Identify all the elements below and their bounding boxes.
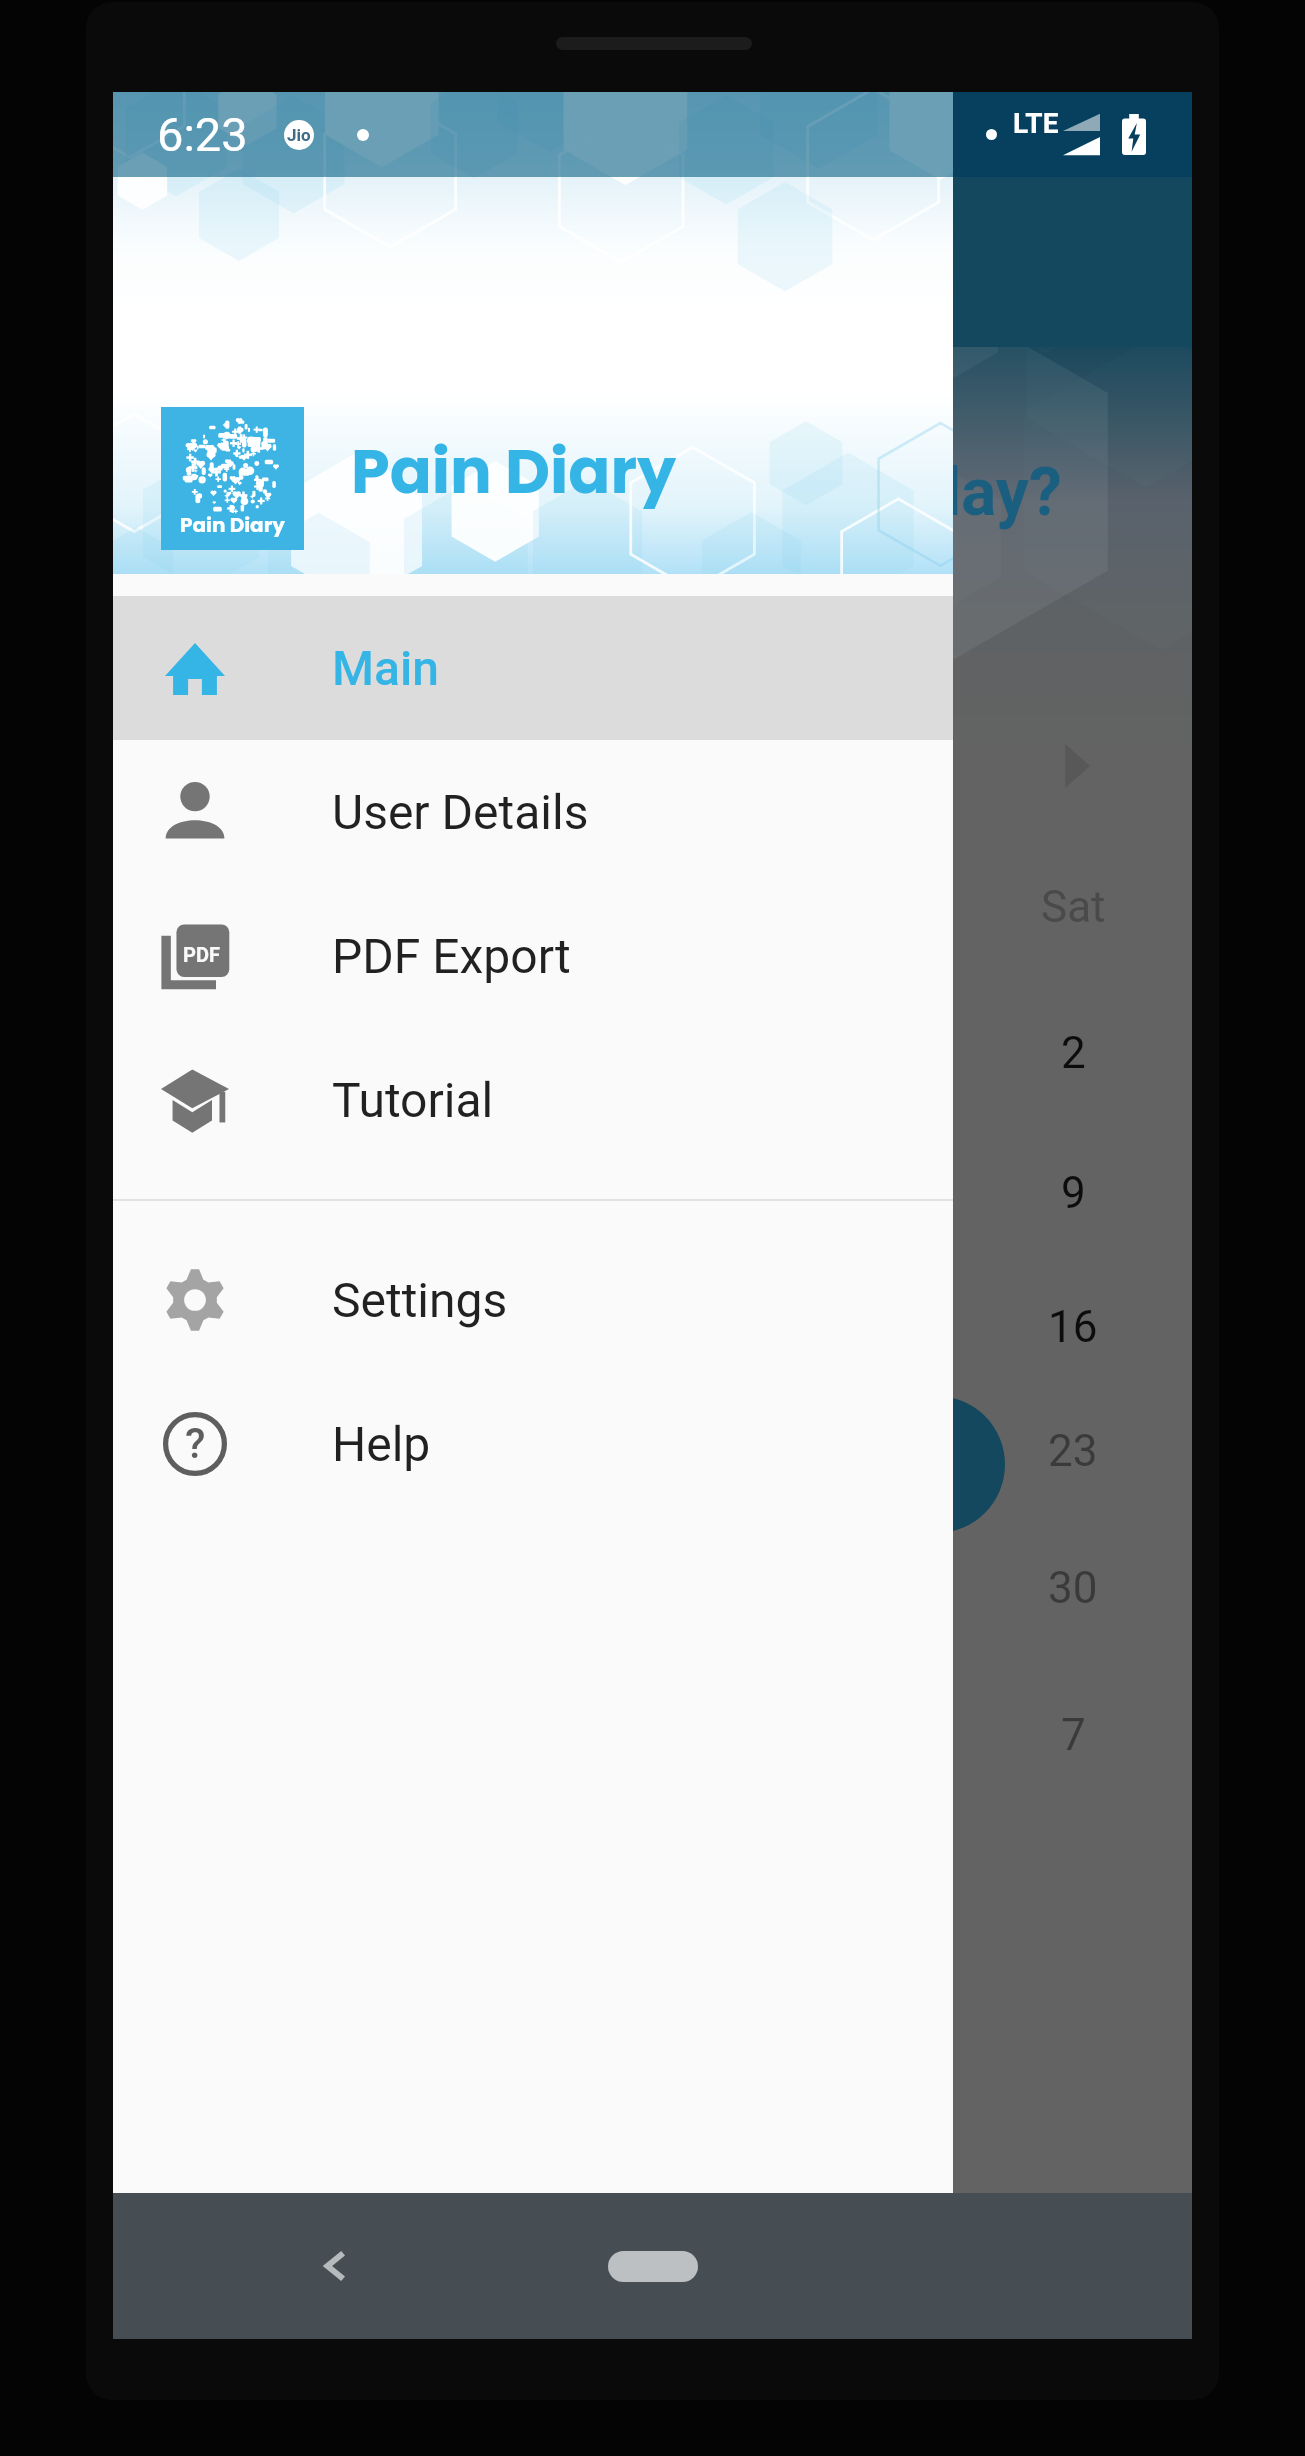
staticText: User Details — [332, 784, 589, 840]
staticText: Jio — [287, 125, 311, 145]
staticText: 9 — [1061, 1167, 1086, 1219]
staticText: PDF — [183, 943, 220, 966]
button[interactable]: Back — [306, 2237, 364, 2295]
staticText: Help — [332, 1416, 431, 1472]
staticText: 30 — [1048, 1562, 1098, 1614]
staticText: ? — [185, 1419, 206, 1468]
staticText: PDF Export — [332, 928, 571, 984]
staticText: Pain Diary — [180, 511, 285, 539]
button[interactable]: User Details — [113, 740, 953, 884]
button[interactable]: Main — [113, 596, 953, 740]
button[interactable]: Sat — [1013, 859, 1133, 955]
button[interactable]: 9 — [1013, 1145, 1133, 1241]
staticText: 23 — [1048, 1425, 1098, 1477]
button[interactable]: Tutorial — [113, 1028, 953, 1172]
button[interactable]: ? — [113, 1372, 953, 1516]
staticText: How was your day? — [493, 454, 1062, 531]
staticText: Sat — [1041, 881, 1106, 933]
staticText: 16 — [1048, 1301, 1098, 1353]
staticText: Settings — [332, 1272, 508, 1328]
staticText: 6:23 — [157, 107, 248, 162]
staticText: LTE — [1013, 107, 1059, 140]
button[interactable]: 23 — [1013, 1403, 1133, 1499]
button[interactable]: Home — [608, 2251, 698, 2282]
button[interactable]: 30 — [1013, 1540, 1133, 1636]
button[interactable]: 16 — [1013, 1279, 1133, 1375]
staticText: 7 — [1061, 1709, 1086, 1761]
staticText: 2 — [1061, 1027, 1086, 1079]
button[interactable]: Add entry — [868, 1396, 1005, 1533]
button[interactable]: 2 — [1013, 1005, 1133, 1101]
button[interactable]: 7 — [1013, 1687, 1133, 1783]
button[interactable]: PDF — [113, 884, 953, 1028]
staticText: Main — [332, 640, 439, 696]
staticText: Pain Diary — [351, 428, 677, 515]
button[interactable]: Settings — [113, 1228, 953, 1372]
staticText: Tutorial — [332, 1072, 494, 1128]
